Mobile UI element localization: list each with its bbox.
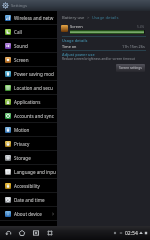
- staticText: Location and secu: [14, 85, 53, 91]
- button[interactable]: Location and secu: [0, 81, 57, 95]
- button[interactable]: Home: [15, 226, 29, 240]
- staticText: About device: [14, 211, 42, 217]
- staticText: Screen: [70, 24, 83, 29]
- staticText: Accessibility: [14, 183, 40, 189]
- button[interactable]: Screen settings: [116, 64, 145, 72]
- button[interactable]: Applications: [0, 95, 57, 109]
- staticText: Motion: [14, 127, 30, 133]
- button[interactable]: Time on: [57, 43, 150, 50]
- button[interactable]: Recent apps: [29, 226, 43, 240]
- button[interactable]: Motion: [0, 123, 57, 137]
- staticText: Language and inpu: [14, 169, 56, 175]
- staticText: Wireless and netw: [14, 15, 54, 21]
- staticText: 02:54: [125, 230, 138, 237]
- button[interactable]: Privacy: [0, 137, 57, 151]
- staticText: >: [87, 15, 90, 21]
- staticText: Applications: [14, 99, 41, 105]
- button[interactable]: Call: [0, 25, 57, 39]
- staticText: Battery use: [62, 15, 85, 21]
- staticText: 5.4%: [137, 25, 145, 29]
- staticText: Screen settings: [119, 66, 142, 70]
- button[interactable]: Storage: [0, 151, 57, 165]
- staticText: Power saving mod: [14, 71, 54, 77]
- button[interactable]: Accessibility: [0, 179, 57, 193]
- button[interactable]: Date and time: [0, 193, 57, 207]
- button[interactable]: Back: [1, 226, 15, 240]
- staticText: Adjust power use: [62, 52, 95, 57]
- button[interactable]: About device: [0, 207, 57, 221]
- button[interactable]: Wireless and netw: [0, 11, 57, 25]
- button[interactable]: Power saving mod: [0, 67, 57, 81]
- staticText: Time on: [62, 44, 77, 49]
- button[interactable]: Language and inpu: [0, 165, 57, 179]
- staticText: Call: [14, 29, 22, 35]
- button[interactable]: Sound: [0, 39, 57, 53]
- button[interactable]: Screenshot: [43, 226, 57, 240]
- staticText: Usage details: [92, 15, 119, 21]
- button[interactable]: Battery use: [62, 15, 85, 21]
- staticText: Usage details: [62, 38, 88, 43]
- staticText: Privacy: [14, 141, 30, 147]
- staticText: 11h 15m 26s: [122, 44, 145, 49]
- staticText: Storage: [14, 155, 31, 161]
- staticText: Settings: [11, 3, 27, 9]
- staticText: Screen: [14, 57, 29, 63]
- staticText: Accounts and sync: [14, 113, 54, 119]
- staticText: Reduce screen brightness and/or screen t…: [62, 57, 135, 61]
- button[interactable]: Screen: [57, 22, 150, 35]
- button[interactable]: Screen: [0, 53, 57, 67]
- staticText: Date and time: [14, 197, 45, 203]
- button[interactable]: Accounts and sync: [0, 109, 57, 123]
- staticText: Sound: [14, 43, 28, 49]
